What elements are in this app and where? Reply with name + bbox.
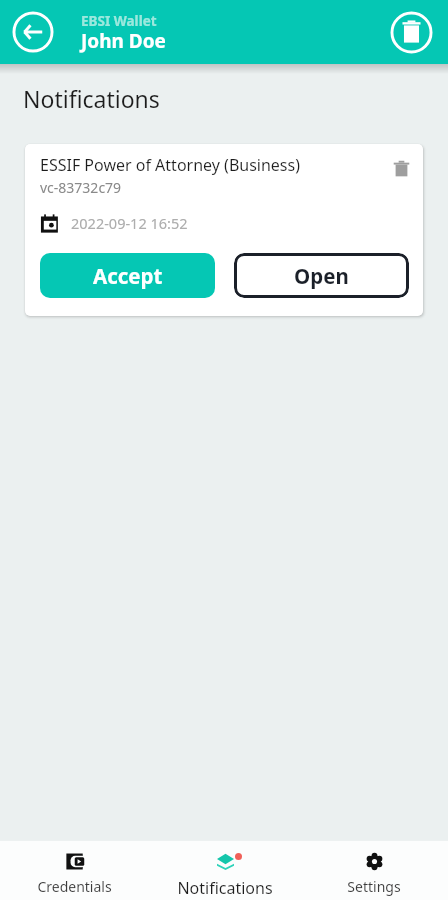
staticText: Open — [294, 262, 349, 290]
staticText: Notifications — [23, 83, 160, 114]
staticText: Settings — [347, 877, 401, 896]
staticText: Notifications — [177, 877, 273, 899]
button[interactable]: Credentials — [0, 841, 149, 900]
staticText: John Doe — [81, 28, 166, 54]
button[interactable]: Settings — [299, 841, 448, 900]
staticText: vc-83732c79 — [40, 178, 122, 197]
button[interactable]: Back — [10, 9, 56, 55]
staticText: 2022-09-12 16:52 — [71, 213, 188, 233]
button[interactable]: Open — [234, 253, 409, 298]
button[interactable]: Notifications — [150, 841, 299, 900]
staticText: ESSIF Power of Attorney (Business) — [40, 154, 301, 176]
button[interactable]: Delete notification — [388, 156, 414, 182]
staticText: EBSI Wallet — [81, 12, 157, 30]
button[interactable]: ESSIF Power of Attorney (Business) — [25, 144, 423, 316]
staticText: Credentials — [37, 877, 112, 896]
button[interactable]: Delete all notifications — [388, 9, 434, 55]
staticText: Accept — [93, 262, 163, 290]
button[interactable]: Accept — [40, 253, 215, 298]
